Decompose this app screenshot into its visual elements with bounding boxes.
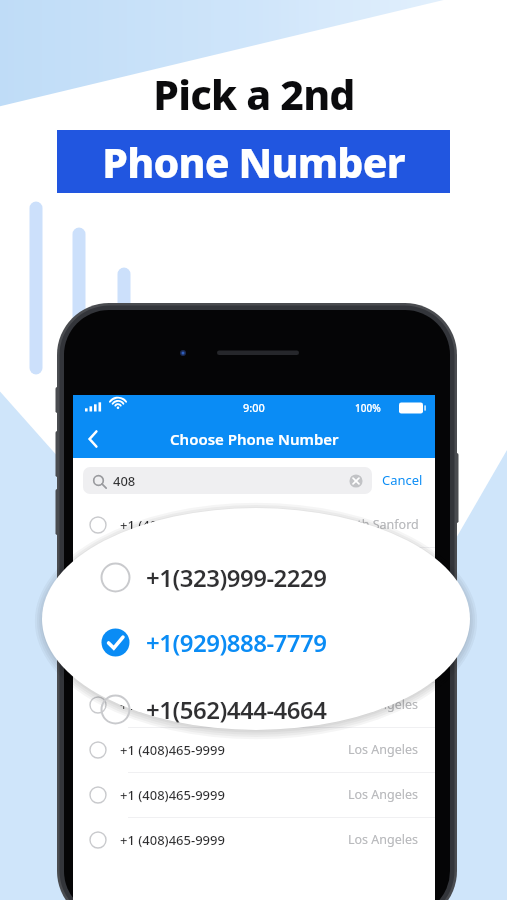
staticText: +1 (408)465-9999 xyxy=(120,831,225,849)
button[interactable]: +1 (408)465-9999 xyxy=(73,592,435,637)
staticText: +1 (408)465-9999 xyxy=(120,561,225,579)
staticText: Cancel xyxy=(382,471,423,489)
button[interactable]: +1(562)444-4664 xyxy=(100,687,430,731)
button[interactable]: +1 (408)465-9999 xyxy=(73,502,435,547)
staticText: Pick a 2nd xyxy=(153,66,355,122)
button[interactable]: +1 (408)465-9999 xyxy=(73,637,435,682)
staticText: 9:00 xyxy=(243,400,265,415)
staticText: Phone Number xyxy=(102,134,405,190)
button[interactable]: +1(929)888-7779 xyxy=(100,620,430,664)
button[interactable]: Clear search xyxy=(348,473,364,489)
staticText: +1 (408)465-9999 xyxy=(120,651,225,669)
button[interactable]: Cancel xyxy=(372,467,425,493)
staticText: +1(929)888-7779 xyxy=(146,626,327,659)
staticText: North Sanford xyxy=(335,516,419,533)
staticText: Los Angeles xyxy=(348,831,419,848)
button[interactable]: Back xyxy=(73,420,111,458)
staticText: +1(562)444-4664 xyxy=(146,693,327,726)
button[interactable]: +1 (408)465-9999 xyxy=(73,772,435,817)
staticText: +1 (408)465-9999 xyxy=(120,516,225,534)
button[interactable]: +1 (408)465-9999 xyxy=(73,817,435,862)
button[interactable]: 408 xyxy=(83,467,372,494)
button[interactable]: +1 (408)465-9999 xyxy=(73,547,435,592)
staticText: 408 xyxy=(113,472,136,490)
staticText: Los Angeles xyxy=(348,786,419,803)
staticText: Los Angeles xyxy=(348,741,419,758)
staticText: Los Angeles xyxy=(348,696,419,713)
staticText: +1(323)999-2229 xyxy=(146,561,327,594)
button[interactable]: +1(323)999-2229 xyxy=(100,555,430,599)
button[interactable]: +1 (408)465-9999 xyxy=(73,727,435,772)
staticText: Choose Phone Number xyxy=(170,429,339,449)
button[interactable]: +1 (408)465-9999 xyxy=(73,682,435,727)
staticText: +1 (408)465-9999 xyxy=(120,741,225,759)
staticText: +1 (408)465-9999 xyxy=(120,696,225,714)
staticText: 100% xyxy=(355,401,381,415)
staticText: +1 (408)465-9999 xyxy=(120,786,225,804)
